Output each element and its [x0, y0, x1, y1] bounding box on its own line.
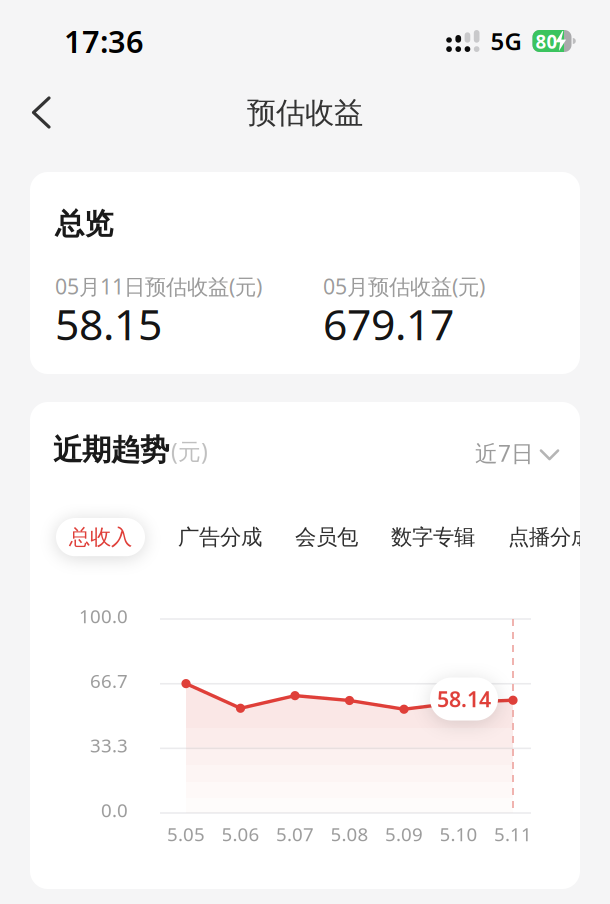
button[interactable]: 会员包: [295, 524, 358, 550]
staticText: 总览: [55, 206, 113, 242]
staticText: 5.07: [276, 822, 314, 846]
staticText: 05月预估收益(元): [323, 272, 485, 300]
staticText: 679.17: [323, 295, 454, 352]
button[interactable]: 近7日: [475, 402, 558, 468]
staticText: 总收入: [69, 524, 132, 550]
staticText: 0.0: [101, 798, 128, 822]
staticText: 5.05: [167, 822, 205, 846]
staticText: 5.08: [330, 822, 368, 846]
staticText: 预估收益: [247, 95, 363, 131]
staticText: (元): [171, 436, 208, 466]
staticText: 66.7: [90, 668, 128, 693]
staticText: 05月11日预估收益(元): [55, 272, 262, 300]
button[interactable]: 总收入: [56, 518, 145, 556]
staticText: 80: [535, 29, 557, 54]
staticText: 近期趋势: [53, 432, 169, 468]
staticText: 17:36: [64, 21, 144, 61]
staticText: 58.14: [437, 685, 491, 713]
staticText: 5.11: [494, 822, 532, 846]
button[interactable]: 数字专辑: [391, 524, 475, 550]
button[interactable]: 广告分成: [178, 524, 262, 550]
staticText: 点播分成: [508, 524, 592, 550]
staticText: 58.15: [55, 295, 162, 352]
button[interactable]: 点播分成: [508, 524, 592, 550]
staticText: 5.06: [221, 822, 259, 846]
button[interactable]: 返回: [0, 86, 51, 140]
staticText: 数字专辑: [391, 524, 475, 550]
staticText: 100.0: [79, 604, 128, 628]
staticText: 5G: [490, 25, 521, 57]
staticText: 近7日: [475, 438, 534, 468]
staticText: 33.3: [90, 733, 128, 758]
staticText: 5.10: [439, 822, 477, 846]
staticText: 广告分成: [178, 524, 262, 550]
staticText: 5.09: [385, 822, 423, 846]
staticText: 会员包: [295, 524, 358, 550]
